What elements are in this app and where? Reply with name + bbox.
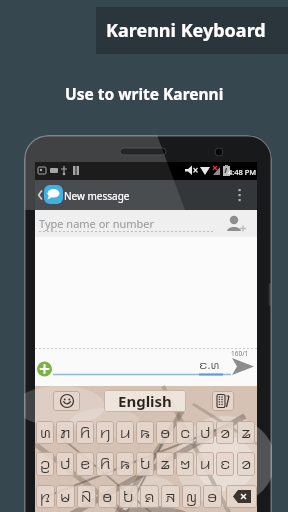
button[interactable]: ꤒ — [136, 421, 154, 444]
button[interactable]: ꤚ — [96, 421, 114, 444]
button[interactable]: ꤖ — [96, 452, 114, 476]
button[interactable]: ꤐ — [36, 485, 55, 508]
staticText: ꤜ — [186, 488, 197, 506]
staticText: ꤣ — [120, 424, 131, 442]
staticText: ꤗ — [60, 488, 71, 506]
staticText: Karenni Keyboard — [106, 18, 266, 43]
staticText: ꤢ.ꤛ — [199, 357, 220, 372]
button[interactable] — [53, 391, 80, 411]
staticText: ꤒ — [120, 455, 131, 473]
button[interactable]: ꤢ — [216, 452, 234, 476]
button[interactable]: ꤋ — [203, 485, 222, 508]
button[interactable]: ꤗ — [56, 485, 75, 508]
staticText: ꤘ — [160, 455, 171, 473]
button[interactable]: ꤏ — [161, 485, 180, 508]
button[interactable] — [232, 185, 248, 205]
button[interactable]: ꤕ — [76, 452, 94, 476]
button[interactable] — [224, 212, 248, 235]
staticText: ꤋ — [207, 488, 218, 506]
staticText: ꤠ — [180, 455, 191, 473]
staticText: ꤝ — [123, 488, 134, 506]
button[interactable]: ꤘ — [156, 452, 174, 476]
staticText: ꤛ — [40, 424, 51, 442]
button[interactable]: ꤝ — [136, 452, 154, 476]
button[interactable]: ꤥ — [98, 485, 117, 508]
staticText: ꤏ — [165, 488, 176, 506]
button[interactable]: ꤣ — [116, 421, 134, 444]
button[interactable]: ꤡ — [77, 485, 96, 508]
button[interactable]: ꤛ — [36, 421, 54, 444]
staticText: ꤘ — [241, 424, 252, 442]
button[interactable]: ꤎ — [140, 485, 159, 508]
button[interactable]: ꤖ — [76, 421, 94, 444]
button[interactable]: ꤠ — [176, 452, 194, 476]
button[interactable] — [36, 360, 54, 378]
button[interactable]: ꤍ — [176, 421, 194, 444]
button[interactable] — [212, 391, 234, 411]
staticText: ꤕ — [80, 455, 91, 473]
button[interactable]: ꤑ — [36, 452, 54, 476]
staticText: New message — [64, 189, 130, 203]
button[interactable]: ꤒ — [116, 452, 134, 476]
staticText: Use to write Karenni — [65, 83, 224, 104]
button[interactable]: ꤤ — [237, 452, 255, 476]
staticText: 160/1 — [231, 349, 249, 358]
staticText: ꤡ — [81, 488, 92, 506]
staticText: ꤥ — [160, 424, 171, 442]
button[interactable]: ꤓ — [56, 452, 74, 476]
staticText: ꤖ — [80, 424, 91, 442]
staticText: ꤝ — [140, 455, 151, 473]
staticText: ꤥ — [102, 488, 113, 506]
staticText: ꤎ — [144, 488, 155, 506]
staticText: ꤣ — [200, 455, 211, 473]
button[interactable]: ꤤ — [216, 421, 234, 444]
button[interactable] — [228, 355, 257, 379]
button[interactable]: ꤘ — [237, 421, 255, 444]
button[interactable]: ꤊ — [56, 421, 74, 444]
staticText: Type name or number — [39, 216, 155, 231]
staticText: ꤊ — [60, 424, 71, 442]
button[interactable]: Type name or number — [35, 210, 257, 237]
button[interactable]: ꤝ — [119, 485, 138, 508]
button[interactable]: ꤜ — [182, 485, 201, 508]
staticText: ꤒ — [140, 424, 151, 442]
button[interactable] — [226, 485, 257, 508]
button[interactable]: ꤣ — [196, 452, 214, 476]
staticText: ꤢ — [220, 455, 231, 473]
staticText: ꤓ — [200, 424, 211, 442]
staticText: 4:48 PM — [228, 167, 257, 177]
staticText: ꤤ — [220, 424, 231, 442]
button[interactable]: English — [104, 390, 186, 412]
button[interactable]: ꤓ — [196, 421, 214, 444]
staticText: ꤚ — [100, 424, 111, 442]
staticText: ꤤ — [241, 455, 252, 473]
staticText: ꤐ — [40, 488, 51, 506]
button[interactable]: ꤥ — [156, 421, 174, 444]
staticText: ꤑ — [40, 455, 51, 473]
staticText: ꤍ — [180, 424, 191, 442]
staticText: ꤖ — [100, 455, 111, 473]
staticText: ꤓ — [60, 455, 71, 473]
staticText: English — [118, 391, 172, 411]
